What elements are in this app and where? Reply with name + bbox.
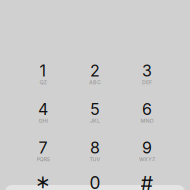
staticText: ABC: [89, 79, 101, 85]
staticText: 7: [38, 138, 47, 157]
button[interactable]: #: [121, 168, 173, 190]
button[interactable]: 9: [121, 134, 173, 172]
staticText: 3: [142, 61, 152, 80]
staticText: 0: [89, 172, 100, 190]
button[interactable]: 1: [17, 57, 69, 95]
staticText: 9: [142, 138, 152, 157]
staticText: #: [140, 171, 153, 190]
staticText: 5: [90, 100, 100, 119]
staticText: ∗: [35, 171, 51, 190]
button[interactable]: 7: [17, 134, 69, 172]
staticText: GHI: [38, 117, 47, 124]
staticText: TUV: [89, 156, 100, 162]
staticText: DEF: [142, 79, 152, 85]
staticText: 8: [90, 138, 100, 157]
button[interactable]: 4: [17, 95, 69, 134]
staticText: JKL: [90, 117, 100, 124]
staticText: 6: [142, 100, 152, 119]
staticText: WXYZ: [139, 156, 155, 162]
staticText: QZ: [39, 79, 46, 85]
staticText: MNO: [140, 117, 153, 124]
staticText: 1: [39, 61, 46, 80]
staticText: 4: [38, 100, 48, 119]
button[interactable]: 3: [121, 57, 173, 95]
button[interactable]: 2: [69, 57, 121, 95]
button[interactable]: 8: [69, 134, 121, 172]
staticText: PQRS: [36, 156, 49, 162]
button[interactable]: ∗: [17, 168, 69, 190]
button[interactable]: 0: [69, 168, 121, 190]
staticText: 2: [90, 61, 100, 80]
button[interactable]: 5: [69, 95, 121, 134]
button[interactable]: 6: [121, 95, 173, 134]
